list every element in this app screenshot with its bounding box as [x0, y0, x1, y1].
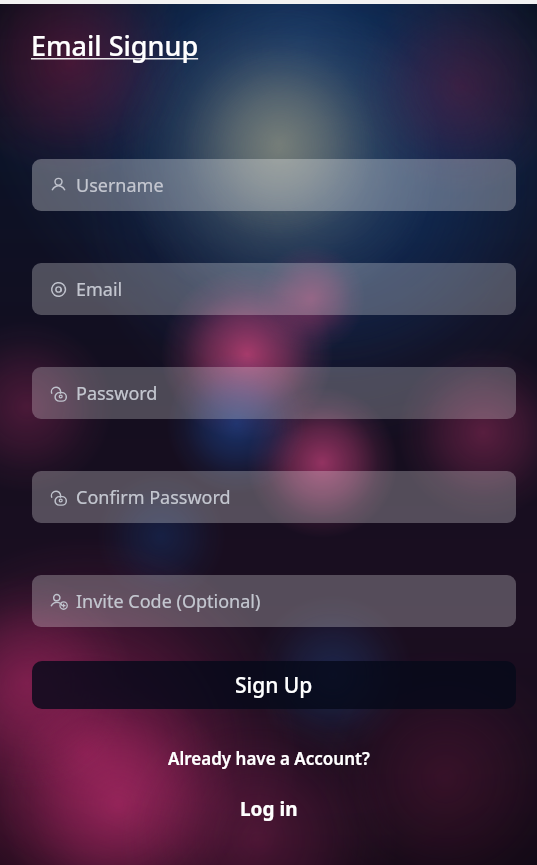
staticText: Username — [76, 173, 164, 198]
staticText: Invite Code (Optional) — [76, 589, 261, 614]
staticText: Password — [76, 381, 158, 406]
button[interactable]: Confirm Password — [32, 471, 516, 523]
button[interactable]: Email — [32, 263, 516, 315]
button[interactable]: Log in — [226, 792, 312, 826]
staticText: Email Signup — [31, 27, 199, 64]
button[interactable]: Username — [32, 159, 516, 211]
button[interactable]: Invite Code (Optional) — [32, 575, 516, 627]
staticText: Already have a Account? — [168, 747, 370, 770]
staticText: Email — [76, 277, 123, 302]
staticText: Log in — [240, 796, 298, 822]
staticText: Confirm Password — [76, 485, 231, 510]
button[interactable]: Sign Up — [32, 661, 516, 709]
button[interactable]: Password — [32, 367, 516, 419]
staticText: Sign Up — [235, 671, 313, 700]
